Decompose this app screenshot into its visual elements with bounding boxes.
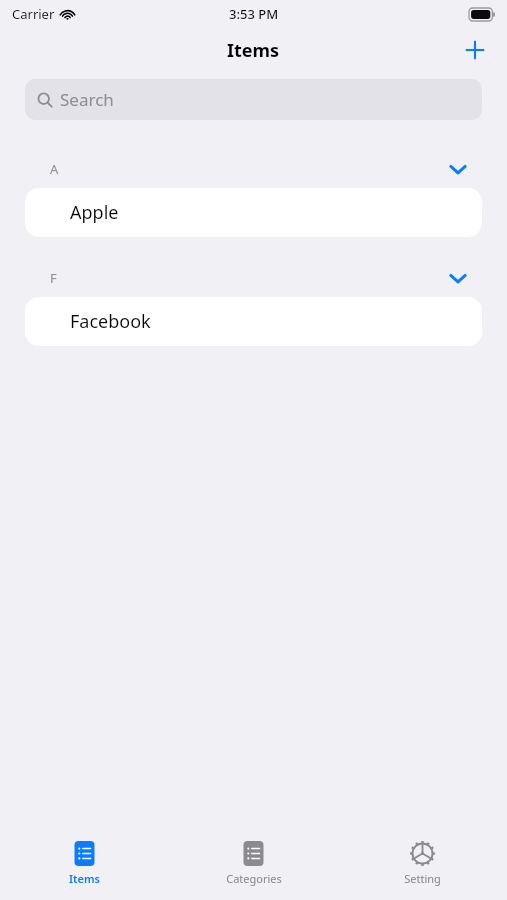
staticText: Apple: [70, 200, 119, 225]
button[interactable]: Search: [25, 79, 482, 120]
button[interactable]: Apple: [25, 188, 482, 237]
button[interactable]: Items: [0, 828, 169, 900]
button[interactable]: Add item: [453, 28, 497, 72]
staticText: Carrier: [12, 5, 55, 23]
staticText: F: [50, 269, 57, 287]
staticText: Items: [227, 38, 280, 63]
staticText: 3:53 PM: [229, 5, 279, 23]
button[interactable]: Categories: [169, 828, 338, 900]
button[interactable]: Facebook: [25, 297, 482, 346]
staticText: Search: [60, 88, 114, 111]
button[interactable]: Setting: [338, 828, 507, 900]
staticText: Facebook: [70, 309, 151, 334]
staticText: A: [50, 160, 59, 178]
button[interactable]: F: [0, 264, 507, 292]
button[interactable]: A: [0, 155, 507, 183]
staticText: Items: [69, 871, 100, 886]
staticText: Setting: [404, 871, 441, 886]
staticText: Categories: [226, 871, 282, 886]
